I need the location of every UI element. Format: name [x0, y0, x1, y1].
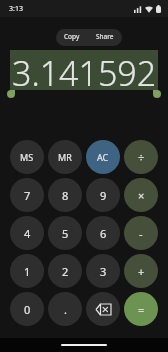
button[interactable]: =	[124, 292, 158, 326]
button[interactable]: AC	[86, 140, 120, 174]
staticText: 0	[24, 302, 31, 317]
staticText: 3:13	[9, 4, 23, 14]
button[interactable]: ÷	[124, 140, 158, 174]
staticText: 3.1415926	[12, 50, 158, 90]
button[interactable]: 1	[10, 254, 44, 288]
staticText: .	[64, 302, 67, 317]
button[interactable]: +	[124, 254, 158, 288]
button[interactable]: 7	[10, 178, 44, 212]
button[interactable]: .	[48, 292, 82, 326]
staticText: -	[139, 226, 143, 241]
staticText: 4	[24, 226, 31, 241]
staticText: 7	[24, 188, 31, 203]
button[interactable]: 3	[86, 254, 120, 288]
staticText: Share	[96, 32, 114, 41]
staticText: 2	[62, 264, 69, 279]
button[interactable]: 9	[86, 178, 120, 212]
staticText: 1	[24, 264, 31, 279]
staticText: +	[138, 264, 145, 279]
staticText: ÷	[138, 150, 145, 165]
staticText: 3	[100, 264, 107, 279]
staticText: 8	[62, 188, 69, 203]
button[interactable]: 6	[86, 216, 120, 250]
button[interactable]: Copy	[56, 29, 88, 44]
staticText: 6	[100, 226, 107, 241]
staticText: ×	[138, 188, 145, 203]
button[interactable]: Share	[88, 29, 122, 44]
button[interactable]: 2	[48, 254, 82, 288]
button[interactable]: 0	[10, 292, 44, 326]
staticText: =	[138, 302, 145, 317]
staticText: 9	[100, 188, 107, 203]
staticText: MR	[58, 151, 72, 163]
button[interactable]: Delete	[86, 292, 120, 326]
button[interactable]: 3.1415926	[10, 50, 158, 90]
button[interactable]: 8	[48, 178, 82, 212]
button[interactable]: MR	[48, 140, 82, 174]
staticText: Copy	[64, 32, 80, 41]
button[interactable]: -	[124, 216, 158, 250]
button[interactable]: MS	[10, 140, 44, 174]
staticText: 5	[62, 226, 69, 241]
staticText: AC	[97, 151, 109, 163]
staticText: MS	[20, 151, 34, 163]
button[interactable]: ×	[124, 178, 158, 212]
button[interactable]: 4	[10, 216, 44, 250]
button[interactable]: 5	[48, 216, 82, 250]
